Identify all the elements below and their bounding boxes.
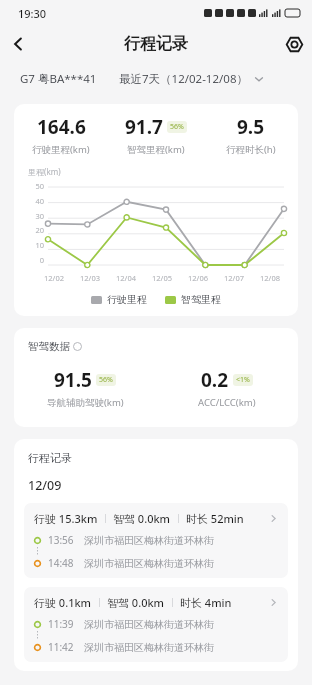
staticText: 20: [24, 225, 44, 235]
staticText: 12/08: [252, 273, 288, 283]
staticText: 14:48: [48, 556, 74, 570]
staticText: 12/04: [108, 273, 144, 283]
staticText: 91.5: [54, 367, 92, 393]
staticText: 9.5: [237, 114, 265, 140]
staticText: 164.6: [37, 114, 86, 140]
staticText: 智驾 0.0km: [107, 595, 165, 610]
staticText: 50: [24, 181, 44, 191]
staticText: 深圳市福田区梅林街道环林街: [84, 641, 214, 654]
staticText: 91.7: [125, 114, 163, 140]
staticText: 13:56: [48, 533, 74, 547]
staticText: 行程记录: [28, 451, 72, 465]
staticText: 行程记录: [124, 34, 188, 54]
staticText: 时长 52min: [186, 511, 244, 526]
staticText: 智驾里程: [181, 293, 221, 306]
staticText: <1%: [236, 375, 250, 385]
staticText: 30: [24, 211, 44, 221]
staticText: 12/02: [36, 273, 72, 283]
staticText: 0.2: [201, 367, 229, 393]
staticText: 最近7天（12/02-12/08）: [119, 71, 248, 87]
staticText: 12/06: [180, 273, 216, 283]
button[interactable]: 行驶 0.1km: [24, 587, 288, 662]
button[interactable]: Back: [0, 26, 36, 62]
staticText: 深圳市福田区梅林街道环林街: [84, 618, 214, 631]
staticText: 12/03: [72, 273, 108, 283]
staticText: 56%: [170, 122, 184, 132]
button[interactable]: Info: [73, 342, 82, 351]
staticText: 11:39: [48, 617, 74, 631]
button[interactable]: 行驶 15.3km: [24, 503, 288, 578]
staticText: 12/05: [144, 273, 180, 283]
staticText: 行驶里程: [107, 293, 147, 306]
staticText: 11:42: [48, 640, 74, 654]
staticText: 行驶 0.1km: [34, 595, 92, 610]
staticText: 行驶 15.3km: [34, 511, 98, 526]
button[interactable]: 最近7天（12/02-12/08）: [119, 71, 264, 87]
button[interactable]: Settings: [276, 26, 312, 62]
staticText: 19:30: [18, 6, 47, 21]
staticText: 智驾里程(km): [127, 143, 185, 156]
staticText: 12/07: [216, 273, 252, 283]
staticText: 12/09: [28, 477, 62, 494]
staticText: 深圳市福田区梅林街道环林街: [84, 557, 214, 570]
staticText: 56%: [99, 375, 113, 385]
staticText: 行程时长(h): [226, 143, 276, 156]
staticText: 10: [24, 240, 44, 250]
staticText: 深圳市福田区梅林街道环林街: [84, 534, 214, 547]
staticText: 时长 4min: [180, 595, 232, 610]
staticText: ACC/LCC(km): [198, 396, 256, 409]
staticText: 导航辅助驾驶(km): [47, 396, 124, 409]
button[interactable]: G7 粤BA***41: [20, 71, 97, 87]
staticText: 0: [24, 255, 44, 265]
staticText: 里程(km): [28, 166, 61, 177]
staticText: 40: [24, 196, 44, 206]
staticText: 智驾数据: [28, 340, 70, 353]
staticText: 智驾 0.0km: [113, 511, 171, 526]
staticText: 行驶里程(km): [32, 143, 90, 156]
